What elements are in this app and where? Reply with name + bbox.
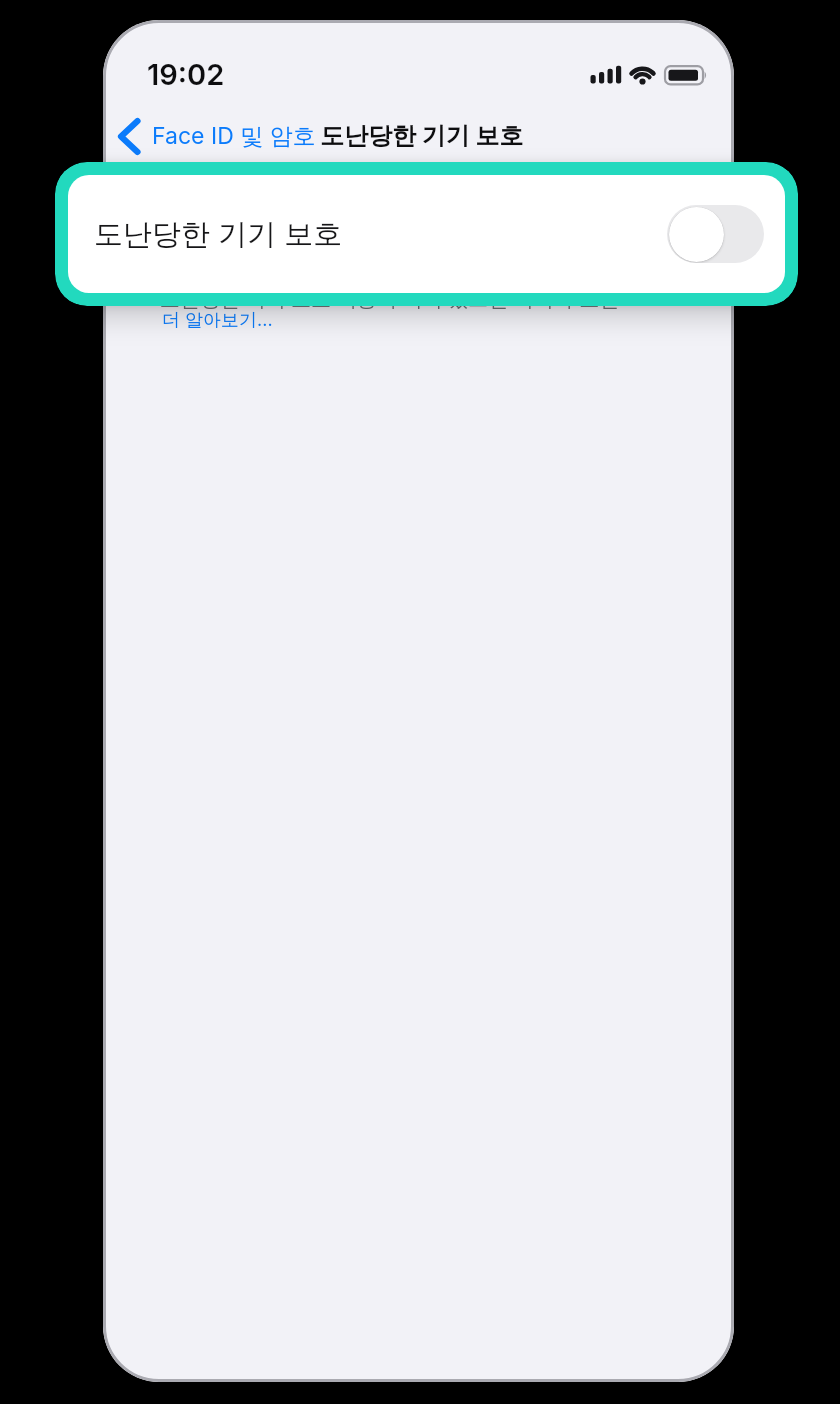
staticText: 더 알아보기... (162, 309, 273, 332)
button[interactable]: 더 알아보기... (162, 309, 273, 332)
staticText: 19:02 (147, 57, 225, 92)
staticText: 도난당한 기기 보호 (94, 216, 343, 253)
button[interactable] (667, 205, 764, 263)
staticText: 도난당한 기기 보호 기능이 켜져 있으면 기기가 도난 (160, 287, 620, 312)
button[interactable]: 도난당한 기기 보호 (68, 175, 785, 293)
staticText: Face ID 및 암호 (152, 122, 316, 151)
staticText: 도난당한 기기 보호 (320, 121, 524, 151)
